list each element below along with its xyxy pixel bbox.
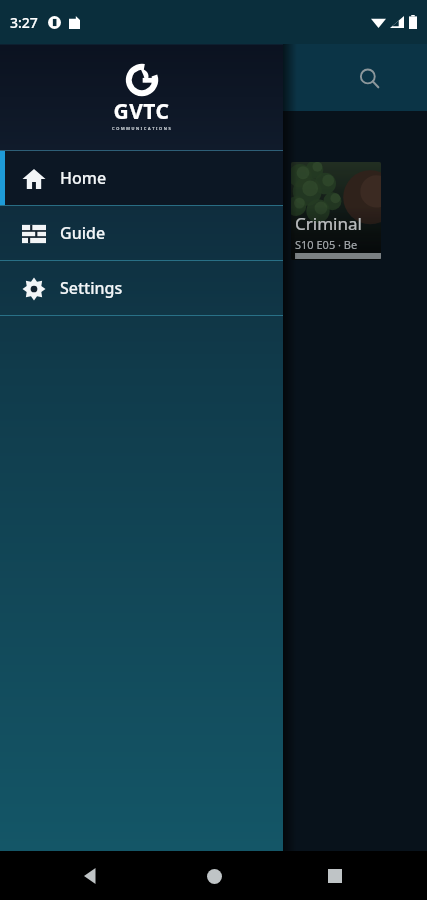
button[interactable]: Home — [194, 856, 234, 896]
button[interactable]: Home — [0, 151, 283, 205]
staticText: S10 E05 · Be — [295, 237, 358, 252]
staticText: o Deal — [180, 205, 228, 230]
staticText: Guide — [60, 222, 106, 244]
button[interactable]: Settings — [0, 261, 283, 315]
staticText: Settings — [60, 277, 123, 299]
button[interactable]: Search — [349, 58, 389, 98]
button[interactable]: Guide — [0, 206, 283, 260]
button[interactable]: Recent apps — [315, 856, 355, 896]
staticText: Criminal — [295, 212, 362, 235]
staticText: GVTC — [113, 97, 170, 126]
staticText: C O M M U N I C A T I O N S — [112, 126, 171, 131]
button[interactable]: CBS — [180, 162, 283, 260]
staticText: Home — [60, 167, 107, 189]
button[interactable]: Back — [72, 856, 112, 896]
button[interactable]: Criminal — [291, 162, 381, 260]
staticText: 3:27 — [10, 13, 38, 32]
